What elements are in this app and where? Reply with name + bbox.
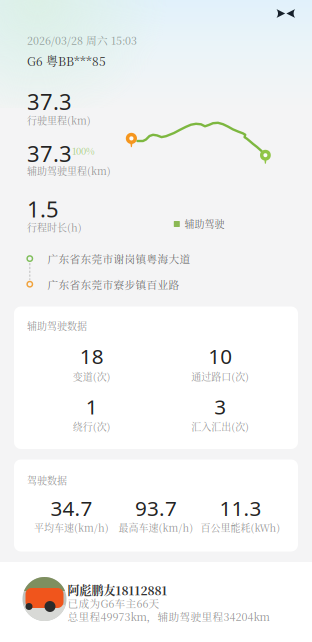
staticText: 驾驶数据: [27, 473, 67, 487]
staticText: 10: [208, 342, 232, 370]
staticText: G6 粤BB***85: [27, 52, 106, 69]
staticText: 100%: [72, 144, 95, 157]
staticText: 阿彪鹏友18112881: [67, 581, 167, 599]
staticText: 37.3: [27, 138, 72, 168]
staticText: 辅助驾驶里程(km): [27, 163, 111, 178]
staticText: 34.7: [50, 494, 92, 522]
staticText: 1.5: [27, 194, 59, 224]
staticText: 广东省东莞市寮步镇百业路: [47, 277, 179, 292]
staticText: 总里程49973km，辅助驾驶里程34204km: [67, 609, 269, 624]
staticText: 广东省东莞市谢岗镇粤海大道: [47, 251, 190, 266]
button[interactable]: 阿彪鹏友18112881: [0, 0, 312, 642]
staticText: 已成为G6车主66天: [67, 595, 159, 611]
staticText: 93.7: [135, 494, 177, 522]
staticText: 百公里能耗(kWh): [200, 520, 280, 535]
staticText: 18: [80, 342, 104, 370]
staticText: 最高车速(km/h): [118, 520, 193, 535]
staticText: 绕行(次): [73, 419, 111, 434]
staticText: 2026/03/28 周六 15:03: [27, 32, 137, 48]
staticText: 1: [86, 392, 98, 420]
staticText: 3: [214, 392, 226, 420]
staticText: 平均车速(km/h): [34, 520, 109, 535]
staticText: 辅助驾驶: [184, 216, 224, 231]
staticText: 变道(次): [73, 369, 111, 384]
staticText: 行程时长(h): [27, 220, 82, 234]
staticText: 汇入汇出(次): [191, 419, 249, 434]
staticText: 11.3: [219, 494, 261, 522]
staticText: 行驶里程(km): [27, 113, 91, 127]
staticText: 辅助驾驶数据: [27, 318, 87, 333]
staticText: 37.3: [27, 86, 72, 116]
staticText: 通过路口(次): [191, 369, 249, 384]
button[interactable]: Collapse: [0, 0, 312, 642]
